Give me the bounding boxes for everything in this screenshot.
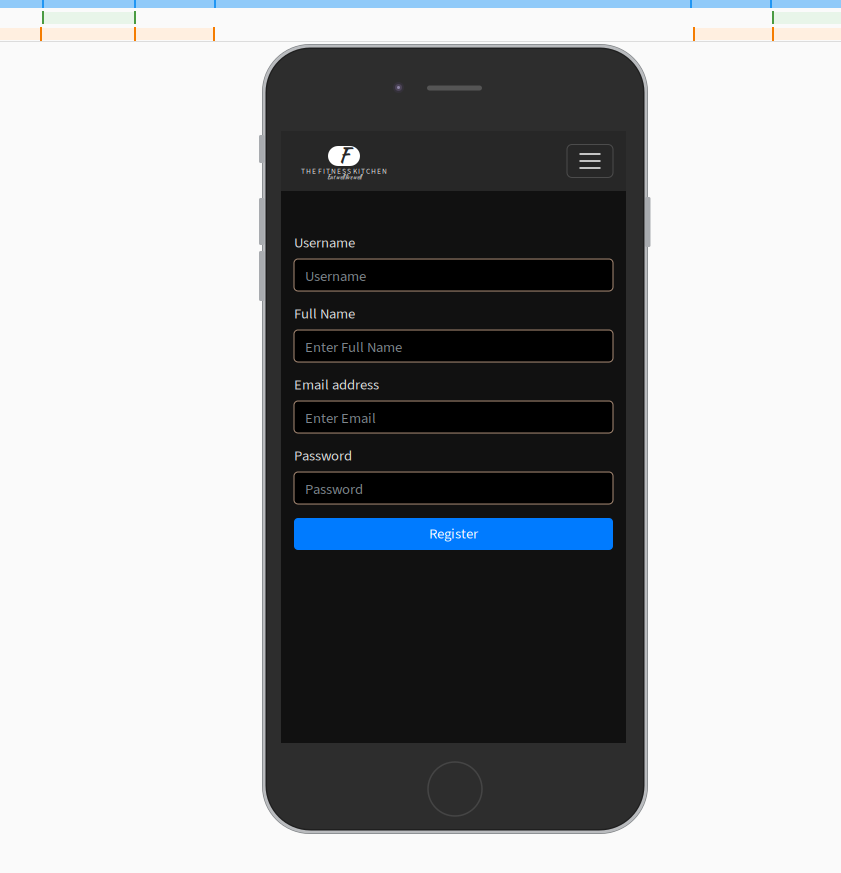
staticText: Username: [294, 233, 355, 253]
button[interactable]: Username: [294, 259, 613, 291]
staticText: T H E F I T N E S S K I T C H E N: [301, 166, 387, 177]
staticText: F: [338, 141, 349, 170]
button[interactable]: Menu: [567, 144, 613, 177]
staticText: Register: [429, 524, 478, 544]
button[interactable]: Password: [294, 472, 613, 504]
staticText: Username: [305, 266, 366, 287]
button[interactable]: Enter Email: [294, 401, 613, 433]
button[interactable]: Enter Full Name: [294, 330, 613, 362]
staticText: Email address: [294, 375, 379, 395]
staticText: Eat well live well: [327, 173, 361, 181]
staticText: Password: [305, 479, 363, 500]
staticText: Enter Email: [305, 408, 376, 429]
staticText: Password: [294, 446, 352, 466]
staticText: Full Name: [294, 304, 355, 324]
button[interactable]: Register: [294, 518, 613, 550]
staticText: Enter Full Name: [305, 337, 402, 358]
